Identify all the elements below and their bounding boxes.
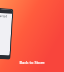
button[interactable]: Back to Store	[19, 60, 45, 65]
button[interactable]: Get started	[0, 8, 12, 56]
staticText: Get started	[0, 13, 8, 18]
